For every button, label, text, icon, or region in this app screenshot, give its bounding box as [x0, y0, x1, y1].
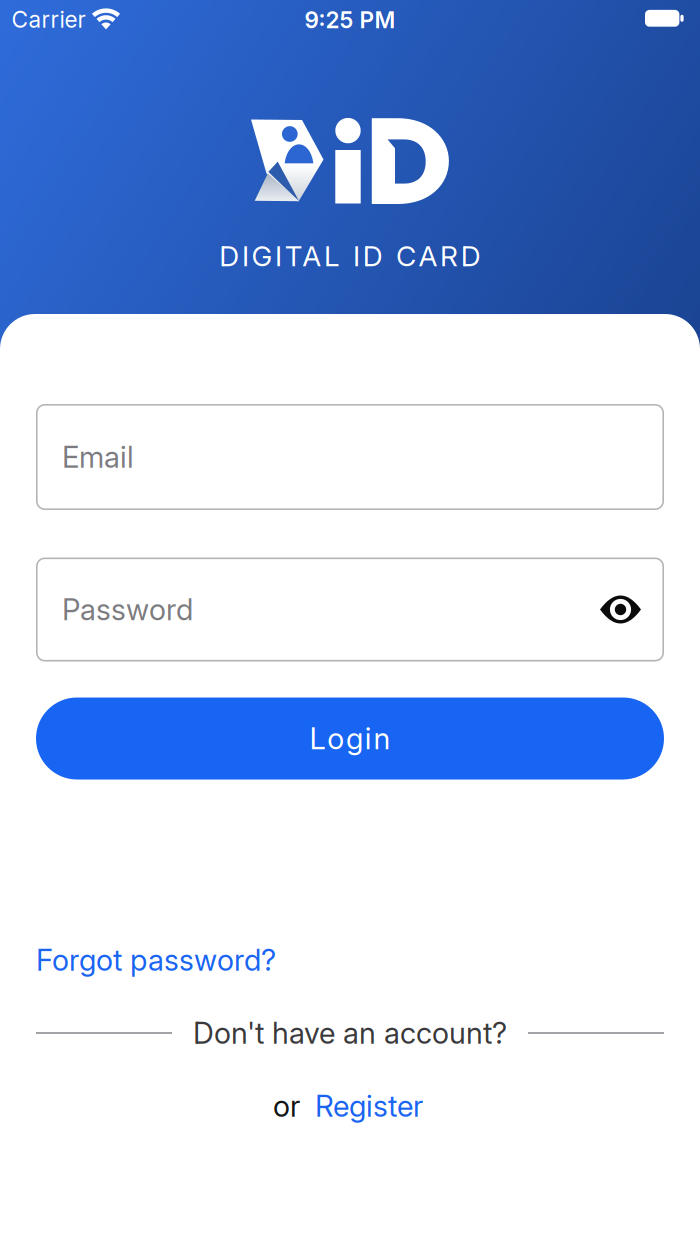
button[interactable]: Register — [315, 1089, 423, 1123]
staticText: Register — [315, 1089, 423, 1123]
staticText: Carrier — [11, 6, 85, 33]
staticText: Password — [62, 592, 193, 627]
button[interactable]: Login — [36, 697, 664, 779]
button[interactable]: Forgot password? — [36, 943, 276, 977]
staticText: Login — [309, 721, 391, 756]
button[interactable]: Email — [36, 404, 664, 510]
staticText: 9:25 PM — [304, 7, 395, 33]
staticText: Forgot password? — [36, 943, 276, 977]
button[interactable]: Password — [36, 557, 664, 661]
staticText: Email — [62, 440, 134, 474]
staticText: DIGITAL ID CARD — [219, 239, 481, 272]
staticText: Don't have an account? — [193, 1016, 507, 1050]
staticText: or — [273, 1089, 300, 1123]
